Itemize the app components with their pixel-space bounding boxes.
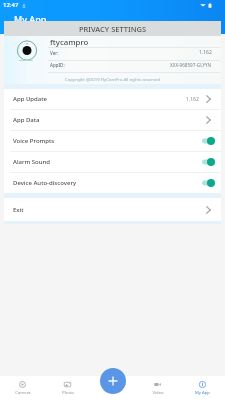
staticText: Photo [62, 390, 74, 396]
staticText: PRIVACY SETTINGS [79, 24, 147, 34]
button[interactable]: Camera [0, 376, 45, 400]
staticText: AppID: [50, 62, 65, 68]
staticText: XXX-968597-GLYYN [170, 62, 212, 68]
staticText: Camera [15, 390, 31, 396]
button[interactable]: Photo [45, 376, 90, 400]
staticText: Copyright @2019 FlyCamPro All rights res… [65, 76, 161, 82]
button[interactable]: App Update [4, 89, 221, 109]
staticText: App Update [13, 95, 47, 103]
staticText: ftycampro [50, 37, 89, 48]
button[interactable]: Add [100, 368, 126, 394]
staticText: App Data [13, 116, 40, 124]
staticText: My App [195, 390, 210, 396]
staticText: Alarm Sound [13, 158, 50, 166]
staticText: Device Auto-discovery [13, 179, 77, 187]
button[interactable]: Alarm Sound [4, 152, 221, 172]
button[interactable]: Video [135, 376, 180, 400]
button[interactable]: App Data [4, 110, 221, 130]
staticText: My App [14, 13, 47, 25]
button[interactable]: Exit [4, 198, 221, 221]
staticText: Voice Prompts [13, 137, 55, 145]
staticText: 12:47 [3, 1, 19, 9]
button[interactable]: Voice Prompts [4, 131, 221, 151]
button[interactable]: Device Auto-discovery [4, 173, 221, 193]
staticText: Ver: [50, 50, 59, 56]
staticText: 1.162 [199, 49, 212, 56]
staticText: Exit [13, 206, 24, 214]
staticText: 1.162 [186, 96, 199, 103]
staticText: Video [152, 390, 164, 396]
button[interactable]: My App [180, 376, 225, 400]
